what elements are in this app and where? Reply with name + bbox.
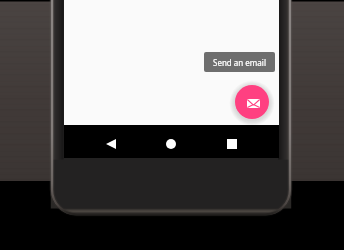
button[interactable]: Home — [151, 125, 191, 158]
button[interactable]: Send an email — [235, 85, 269, 119]
button[interactable]: Back — [91, 125, 131, 158]
button[interactable]: Send an email — [204, 52, 275, 72]
staticText: Send an email — [213, 57, 266, 68]
button[interactable]: Recent apps — [212, 125, 252, 158]
